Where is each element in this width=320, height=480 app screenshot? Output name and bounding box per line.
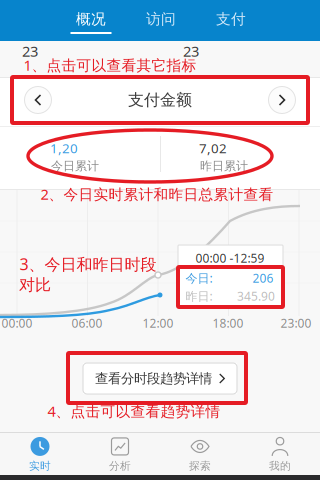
staticText: 今日: <box>185 270 212 286</box>
staticText: 支付 <box>216 10 246 28</box>
staticText: 探索 <box>189 459 211 472</box>
button[interactable]: 访问 <box>126 0 196 41</box>
staticText: 实时 <box>29 459 51 472</box>
staticText: 06:00 <box>71 315 102 331</box>
staticText: 206 <box>252 270 273 286</box>
button[interactable]: 支付 <box>196 0 266 41</box>
button[interactable]: 查看分时段趋势详情 <box>83 363 237 394</box>
staticText: 分析 <box>109 459 131 472</box>
staticText: 2、今日实时累计和昨日总累计查看 <box>40 184 273 204</box>
staticText: 00:00 <box>1 315 32 331</box>
button[interactable]: 分析 <box>80 431 160 476</box>
staticText: 1、点击可以查看其它指标 <box>23 55 196 75</box>
staticText: 今日累计 <box>51 159 99 173</box>
staticText: 345.90 <box>237 288 275 304</box>
button[interactable]: Next metric <box>267 85 297 115</box>
button[interactable]: 概况 <box>56 0 126 41</box>
staticText: 我的 <box>269 459 291 472</box>
staticText: 访问 <box>146 10 176 28</box>
staticText: 支付金额 <box>128 90 192 110</box>
staticText: 00:00 -12:59 <box>195 250 264 266</box>
staticText: 23:00 <box>280 315 311 331</box>
button[interactable]: 探索 <box>160 431 240 476</box>
staticText: 3、今日和昨日时段 <box>19 253 156 275</box>
staticText: 23 <box>22 41 38 61</box>
staticText: 12:00 <box>142 315 173 331</box>
staticText: 4、点击可以查看趋势详情 <box>47 401 220 421</box>
staticText: 查看分时段趋势详情 <box>95 370 212 387</box>
staticText: 对比 <box>19 275 51 295</box>
button[interactable]: 我的 <box>240 431 320 476</box>
button[interactable]: Previous metric <box>23 85 53 115</box>
staticText: 7,02 <box>199 139 227 157</box>
staticText: 概况 <box>76 10 106 28</box>
staticText: 昨日累计 <box>200 159 248 173</box>
button[interactable]: 实时 <box>0 431 80 476</box>
staticText: 昨日: <box>185 288 212 304</box>
staticText: 23 <box>183 41 199 61</box>
staticText: 1,20 <box>50 139 78 157</box>
staticText: 18:00 <box>212 315 243 331</box>
